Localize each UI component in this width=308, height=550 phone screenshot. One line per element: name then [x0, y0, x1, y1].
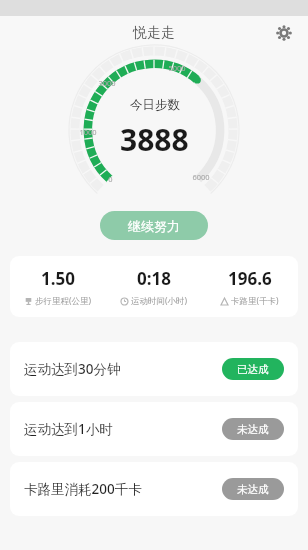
staticText: 1000 — [79, 127, 97, 137]
staticText: 卡路里(千卡) — [231, 295, 279, 307]
staticText: 继续努力 — [128, 218, 180, 234]
staticText: 3888 — [120, 119, 189, 160]
staticText: 运动时间(小时) — [131, 295, 188, 307]
button[interactable]: 运动达到30分钟 — [10, 342, 298, 396]
staticText: 步行里程(公里) — [35, 295, 92, 307]
staticText: 196.6 — [228, 267, 272, 290]
staticText: 1.50 — [41, 267, 75, 290]
staticText: 卡路里消耗200千卡 — [24, 480, 222, 498]
staticText: 未达成 — [237, 483, 269, 496]
button[interactable]: 继续努力 — [100, 211, 208, 240]
staticText: 运动达到30分钟 — [24, 360, 222, 378]
staticText: 3000 — [98, 78, 116, 88]
button[interactable]: 运动达到1小时 — [10, 402, 298, 456]
staticText: 5000 — [168, 63, 186, 73]
staticText: 0 — [108, 174, 113, 184]
staticText: 已达成 — [237, 363, 269, 376]
staticText: 悦走走 — [133, 24, 175, 42]
button[interactable]: 卡路里消耗200千卡 — [10, 462, 298, 516]
staticText: 今日步数 — [130, 97, 180, 113]
button[interactable]: 1.50 — [10, 256, 298, 317]
staticText: 未达成 — [237, 423, 269, 436]
staticText: 运动达到1小时 — [24, 420, 222, 438]
staticText: 6000 — [192, 172, 210, 182]
button[interactable]: Settings — [272, 21, 296, 45]
staticText: 0:18 — [137, 267, 171, 290]
